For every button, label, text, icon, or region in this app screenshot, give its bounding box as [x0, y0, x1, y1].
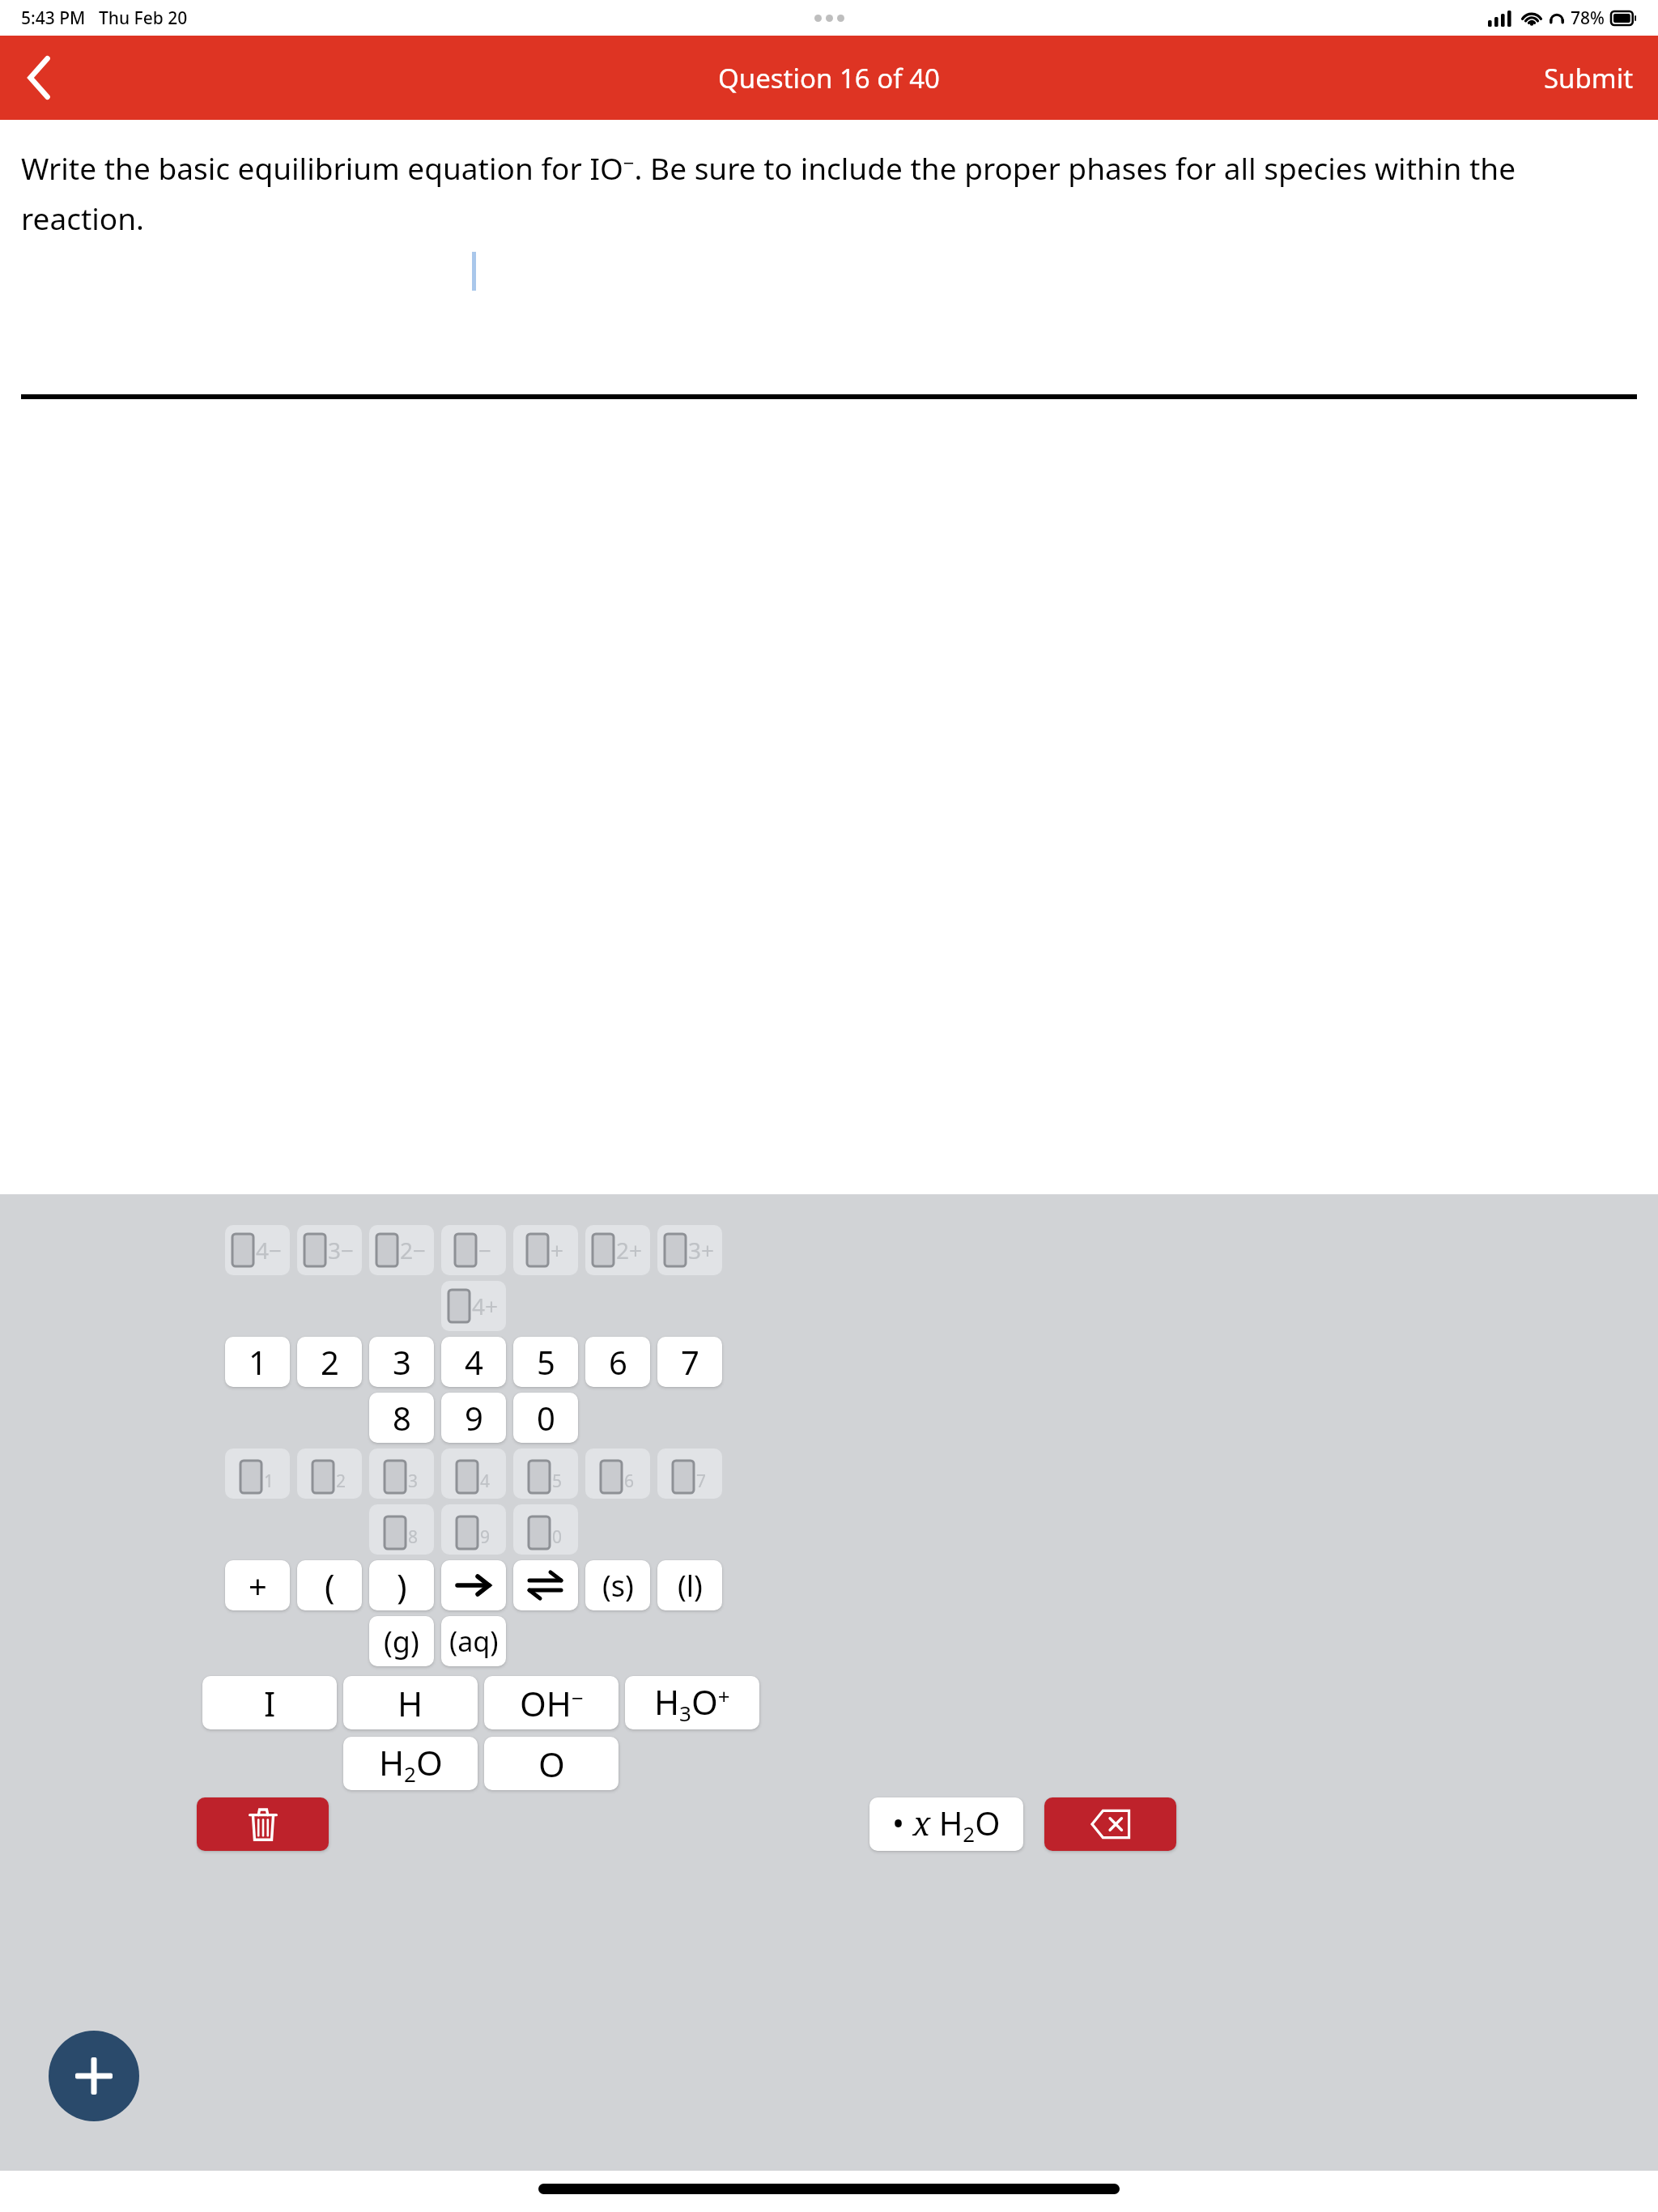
staticText: H	[397, 1680, 423, 1726]
staticText: Submit	[1544, 60, 1634, 96]
staticText: 3	[393, 1340, 411, 1384]
staticText: 0	[552, 1525, 563, 1549]
staticText: (aq)	[449, 1623, 499, 1660]
staticText: 78%	[1571, 6, 1605, 30]
button[interactable]: charge 2+	[585, 1225, 650, 1275]
staticText: 2−	[400, 1235, 427, 1266]
button[interactable]: 1	[225, 1337, 290, 1387]
button[interactable]: Clear all	[197, 1797, 329, 1851]
button[interactable]: 7	[657, 1337, 722, 1387]
button[interactable]: charge 4−	[225, 1225, 290, 1275]
staticText: 4−	[256, 1235, 283, 1266]
button[interactable]: subscript 6	[585, 1448, 650, 1499]
button[interactable]: subscript 3	[369, 1448, 434, 1499]
button[interactable]: 5	[513, 1337, 578, 1387]
button[interactable]: OH−	[484, 1676, 619, 1729]
staticText: −	[478, 1235, 492, 1266]
staticText: +	[551, 1235, 564, 1266]
staticText: 4	[465, 1340, 483, 1384]
button[interactable]: charge 4+	[441, 1281, 506, 1331]
staticText: 6	[609, 1340, 627, 1384]
button[interactable]: )	[369, 1560, 434, 1610]
staticText: (	[325, 1563, 335, 1609]
staticText: 4	[480, 1470, 491, 1493]
staticText: 2	[336, 1470, 346, 1493]
button[interactable]: H2O	[343, 1737, 478, 1790]
staticText: 5	[552, 1470, 563, 1493]
button[interactable]: Back	[5, 43, 74, 113]
staticText: Write the basic equilibrium equation for…	[21, 147, 1639, 239]
button[interactable]: Backspace	[1044, 1797, 1176, 1851]
staticText: • x H2O	[892, 1801, 1001, 1848]
staticText: (s)	[602, 1566, 634, 1606]
staticText: 0	[537, 1396, 555, 1440]
staticText: )	[397, 1563, 407, 1609]
button[interactable]: H3O+	[625, 1676, 759, 1729]
button[interactable]: subscript 5	[513, 1448, 578, 1499]
staticText: O	[538, 1741, 565, 1787]
staticText: Thu Feb 20	[99, 6, 188, 30]
button[interactable]: (g)	[369, 1616, 434, 1666]
button[interactable]: 9	[441, 1393, 506, 1443]
button[interactable]: H	[343, 1676, 478, 1729]
staticText: 4+	[472, 1291, 499, 1321]
button[interactable]: • x H2O	[869, 1797, 1023, 1851]
staticText: H3O+	[654, 1678, 730, 1728]
staticText: OH−	[520, 1680, 584, 1726]
staticText: 3−	[328, 1235, 355, 1266]
button[interactable]: Submit	[1531, 50, 1647, 106]
staticText: 8	[408, 1525, 419, 1549]
button[interactable]: 3	[369, 1337, 434, 1387]
button[interactable]: 0	[513, 1393, 578, 1443]
staticText: 2+	[616, 1235, 643, 1266]
button[interactable]: 2	[297, 1337, 362, 1387]
staticText: 6	[624, 1470, 635, 1493]
button[interactable]: subscript 9	[441, 1504, 506, 1555]
staticText: 7	[696, 1470, 707, 1493]
button[interactable]: (aq)	[441, 1616, 506, 1666]
staticText: 9	[465, 1396, 483, 1440]
staticText: 7	[681, 1340, 699, 1384]
button[interactable]: (	[297, 1560, 362, 1610]
staticText: 1	[264, 1470, 274, 1493]
button[interactable]: O	[484, 1737, 619, 1790]
button[interactable]: (l)	[657, 1560, 722, 1610]
button[interactable]: subscript 2	[297, 1448, 362, 1499]
button[interactable]: Add	[49, 2031, 139, 2121]
button[interactable]: subscript 0	[513, 1504, 578, 1555]
button[interactable]: I	[202, 1676, 337, 1729]
button[interactable]: subscript 7	[657, 1448, 722, 1499]
button[interactable]: +	[225, 1560, 290, 1610]
staticText: 8	[393, 1396, 411, 1440]
staticText: 3	[408, 1470, 419, 1493]
staticText: 5:43 PM	[21, 6, 86, 30]
button[interactable]: 4	[441, 1337, 506, 1387]
button[interactable]: charge 2−	[369, 1225, 434, 1275]
button[interactable]: (s)	[585, 1560, 650, 1610]
button[interactable]: charge −	[441, 1225, 506, 1275]
button[interactable]: charge 3+	[657, 1225, 722, 1275]
staticText: (g)	[384, 1622, 419, 1661]
button[interactable]: charge 3−	[297, 1225, 362, 1275]
button[interactable]: subscript 1	[225, 1448, 290, 1499]
staticText: 2	[321, 1340, 339, 1384]
button[interactable]: subscript 4	[441, 1448, 506, 1499]
staticText: +	[249, 1563, 267, 1607]
staticText: 3+	[688, 1235, 715, 1266]
staticText: H2O	[379, 1739, 443, 1789]
staticText: 5	[537, 1340, 555, 1384]
staticText: 1	[249, 1340, 267, 1384]
staticText: (l)	[678, 1566, 703, 1606]
staticText: Question 16 of 40	[718, 60, 940, 96]
staticText: I	[264, 1680, 276, 1726]
staticText: 9	[480, 1525, 491, 1549]
button[interactable]: 6	[585, 1337, 650, 1387]
button[interactable]: subscript 8	[369, 1504, 434, 1555]
button[interactable]: 8	[369, 1393, 434, 1443]
button[interactable]: equilibrium arrows	[513, 1560, 578, 1610]
button[interactable]: yields arrow	[441, 1560, 506, 1610]
button[interactable]: charge +	[513, 1225, 578, 1275]
